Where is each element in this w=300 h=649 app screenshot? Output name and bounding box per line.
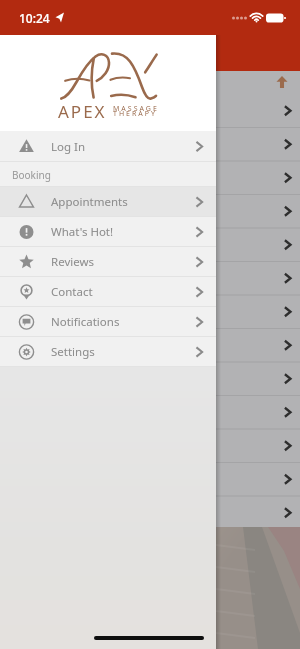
button[interactable]: Reviews [0, 247, 216, 277]
button[interactable]: Appointments [0, 187, 216, 217]
button[interactable]: Settings [0, 337, 216, 367]
staticText: Reviews [51, 254, 95, 270]
staticText: 10:24 [19, 10, 50, 26]
staticText: MASSAGE [113, 104, 159, 114]
button[interactable]: Contact [0, 277, 216, 307]
staticText: Log In [51, 139, 86, 155]
button[interactable]: Log In [0, 131, 216, 162]
staticText: APEX [58, 100, 107, 123]
button[interactable]: Notifications [0, 307, 216, 337]
staticText: Booking [12, 168, 51, 182]
staticText: Contact [51, 284, 93, 300]
button[interactable]: What's Hot! [0, 217, 216, 247]
staticText: Appointments [51, 194, 128, 210]
staticText: What's Hot! [51, 224, 114, 240]
staticText: THERAPY [113, 109, 157, 119]
staticText: Settings [51, 344, 95, 360]
staticText: Notifications [51, 314, 120, 330]
